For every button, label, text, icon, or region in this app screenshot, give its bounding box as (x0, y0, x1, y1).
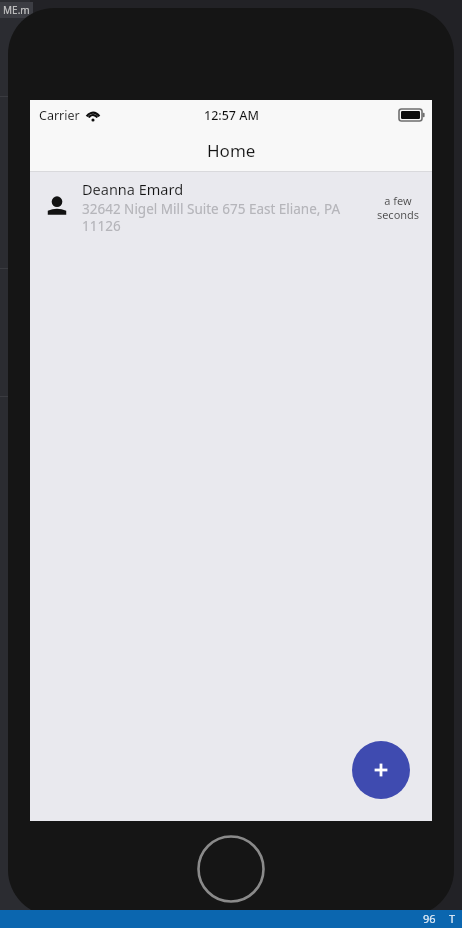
button[interactable]: Deanna Emard (30, 172, 432, 242)
staticText: a few seconds (372, 193, 424, 222)
staticText: 32642 Nigel Mill Suite 675 East Eliane, … (82, 200, 366, 235)
staticText: T (449, 911, 456, 926)
staticText: Home (207, 139, 256, 162)
staticText: Carrier (39, 107, 80, 124)
button[interactable]: Add (352, 741, 410, 799)
staticText: 12:57 AM (204, 107, 259, 124)
staticText: Deanna Emard (82, 179, 184, 199)
button[interactable]: Home (197, 835, 265, 903)
staticText: 96 (423, 911, 436, 926)
staticText: ME.m (3, 3, 30, 17)
